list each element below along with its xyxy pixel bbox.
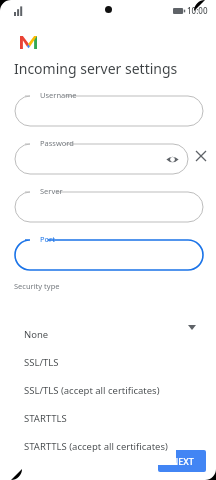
- staticText: Security type: [14, 281, 60, 291]
- staticText: 10:00: [187, 5, 208, 16]
- staticText: SSL/TLS (accept all certificates): [24, 384, 160, 397]
- staticText: STARTTLS: [24, 412, 67, 425]
- staticText: SSL/TLS: [24, 356, 59, 369]
- button[interactable]: Port: [15, 234, 203, 270]
- button[interactable]: Open security type dropdown: [183, 318, 201, 336]
- staticText: Port: [40, 234, 55, 244]
- staticText: NEXT: [171, 455, 194, 467]
- button[interactable]: SSL/TLS: [10, 348, 176, 376]
- staticText: STARTTLS (accept all certificates): [24, 440, 168, 453]
- button[interactable]: Password: [15, 138, 188, 174]
- button[interactable]: None: [10, 320, 176, 348]
- button[interactable]: NEXT: [158, 450, 206, 472]
- button[interactable]: Show password: [164, 151, 180, 167]
- button[interactable]: Username: [15, 90, 203, 126]
- staticText: Username: [40, 90, 77, 100]
- button[interactable]: STARTTLS (accept all certificates): [10, 432, 176, 460]
- button[interactable]: STARTTLS: [10, 404, 176, 432]
- staticText: None: [24, 328, 49, 341]
- staticText: Server: [40, 186, 63, 196]
- button[interactable]: SSL/TLS (accept all certificates): [10, 376, 176, 404]
- staticText: Incoming server settings: [14, 59, 178, 78]
- button[interactable]: Clear: [190, 145, 212, 167]
- button[interactable]: Server: [15, 186, 203, 222]
- staticText: Password: [40, 138, 74, 148]
